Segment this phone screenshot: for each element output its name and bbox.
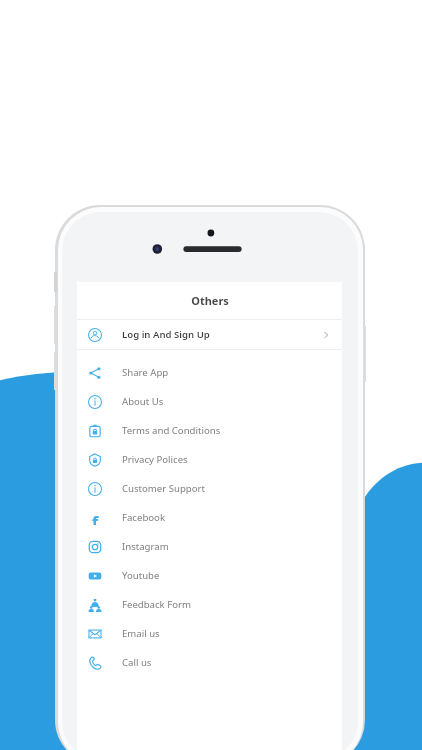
button[interactable]: Youtube — [77, 561, 342, 590]
button[interactable]: Email us — [77, 619, 342, 648]
staticText: Feedback Form — [122, 598, 191, 611]
button[interactable]: Instagram — [77, 532, 342, 561]
staticText: Facebook — [122, 511, 166, 524]
staticText: About Us — [122, 395, 164, 408]
staticText: Log in And Sign Up — [122, 328, 210, 341]
staticText: Terms and Conditions — [122, 424, 221, 437]
button[interactable]: Terms and Conditions — [77, 416, 342, 445]
other: Open login — [321, 330, 331, 340]
button[interactable]: About Us — [77, 387, 342, 416]
staticText: Customer Support — [122, 482, 205, 495]
button[interactable]: Feedback Form — [77, 590, 342, 619]
button[interactable]: Call us — [77, 648, 342, 677]
staticText: f — [92, 511, 99, 525]
staticText: Email us — [122, 627, 160, 640]
staticText: Share App — [122, 366, 169, 379]
button[interactable]: f — [77, 503, 342, 532]
button[interactable]: Log in And Sign Up — [77, 320, 342, 349]
staticText: Youtube — [122, 569, 160, 582]
staticText: Call us — [122, 656, 152, 669]
button[interactable]: Privacy Polices — [77, 445, 342, 474]
button[interactable]: Share App — [77, 358, 342, 387]
staticText: Privacy Polices — [122, 453, 188, 466]
staticText: Others — [191, 293, 229, 308]
button[interactable]: Customer Support — [77, 474, 342, 503]
staticText: Instagram — [122, 540, 169, 553]
